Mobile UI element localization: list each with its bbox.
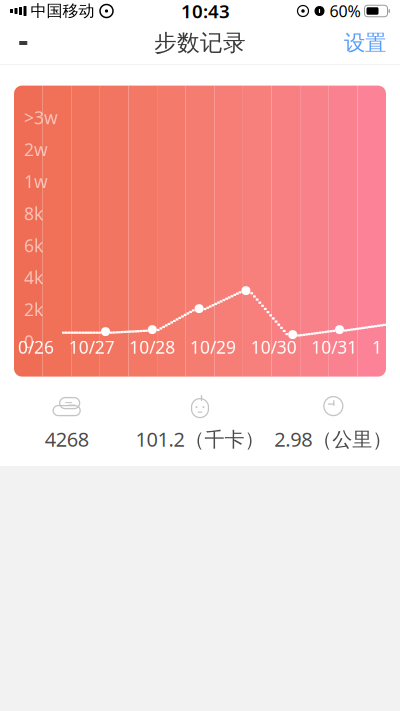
button[interactable]: 4268 bbox=[0, 390, 133, 456]
staticText: 中国移动 bbox=[30, 1, 94, 21]
staticText: 0/26 bbox=[18, 336, 54, 359]
staticText: 10/31 bbox=[311, 336, 357, 359]
staticText: >3w bbox=[24, 106, 58, 129]
staticText: 设置 bbox=[344, 30, 386, 56]
staticText: 2w bbox=[24, 138, 48, 161]
staticText: 101.2（千卡） bbox=[135, 426, 264, 452]
staticText: 2k bbox=[24, 298, 43, 321]
staticText: 4k bbox=[24, 266, 43, 289]
staticText: 10/27 bbox=[69, 336, 115, 359]
staticText: 6k bbox=[24, 234, 43, 257]
staticText: 0 bbox=[24, 330, 34, 353]
staticText: 1w bbox=[24, 170, 48, 193]
staticText: 60% bbox=[329, 0, 360, 22]
staticText: 1 bbox=[372, 336, 382, 359]
staticText: 10/30 bbox=[251, 336, 297, 359]
staticText: 2.98（公里） bbox=[274, 426, 392, 452]
staticText: 10:43 bbox=[181, 0, 230, 23]
button[interactable]: 返回 bbox=[0, 23, 44, 63]
staticText: 8k bbox=[24, 202, 43, 225]
staticText: 4268 bbox=[45, 426, 89, 452]
button[interactable]: 101.2（千卡） bbox=[133, 390, 267, 456]
button[interactable]: 设置 bbox=[330, 23, 400, 63]
staticText: 10/29 bbox=[190, 336, 236, 359]
button[interactable]: 2.98（公里） bbox=[267, 390, 400, 456]
staticText: 步数记录 bbox=[154, 29, 246, 57]
staticText: 10/28 bbox=[129, 336, 175, 359]
